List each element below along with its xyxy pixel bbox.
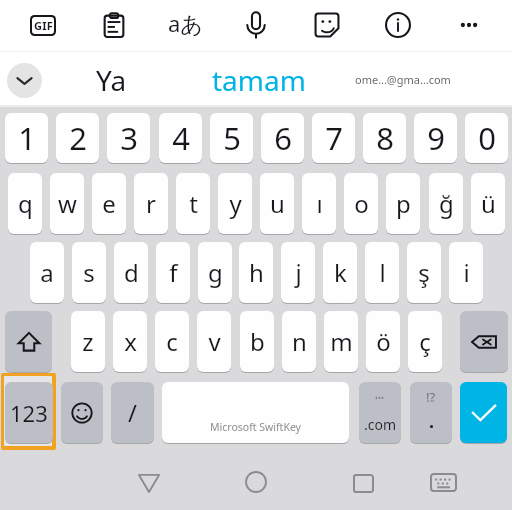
button[interactable]: Back [123, 457, 175, 509]
staticText: Ya [96, 61, 127, 99]
button[interactable]: ı [302, 173, 336, 234]
button[interactable]: Clipboard [91, 2, 137, 48]
staticText: ••• [375, 392, 385, 403]
button[interactable]: n [282, 311, 316, 372]
button[interactable]: tamam [196, 53, 321, 104]
staticText: m [330, 325, 353, 358]
button[interactable]: ç [408, 311, 442, 372]
button[interactable]: Emoji [61, 382, 103, 443]
button[interactable]: b [240, 311, 274, 372]
button[interactable]: 0 [465, 113, 508, 163]
button[interactable]: ome…@gma…com [340, 53, 465, 104]
staticText: 3 [120, 117, 138, 159]
button[interactable]: f [156, 242, 190, 303]
button[interactable]: Voice input [233, 2, 279, 48]
staticText: j [295, 256, 302, 289]
button[interactable]: Home [230, 456, 282, 508]
staticText: 0 [478, 117, 496, 159]
button[interactable]: x [113, 311, 147, 372]
button[interactable]: 4 [159, 113, 202, 163]
button[interactable]: ş [407, 242, 441, 303]
button[interactable]: 123 [5, 382, 53, 443]
button[interactable]: k [323, 242, 357, 303]
button[interactable]: 9 [414, 113, 457, 163]
button[interactable]: Recents [337, 457, 389, 509]
button[interactable]: 7 [312, 113, 355, 163]
button[interactable]: Change language [162, 2, 208, 48]
staticText: b [250, 325, 265, 358]
staticText: w [58, 187, 77, 220]
button[interactable]: d [114, 242, 148, 303]
button[interactable]: ğ [429, 173, 463, 234]
button[interactable]: s [72, 242, 106, 303]
button[interactable]: GIF [20, 2, 66, 48]
button[interactable]: l [365, 242, 399, 303]
button[interactable]: q [8, 173, 42, 234]
staticText: ••• [427, 397, 435, 407]
button[interactable]: t [176, 173, 210, 234]
staticText: ı [316, 187, 323, 220]
button[interactable]: z [71, 311, 105, 372]
button[interactable]: e [92, 173, 126, 234]
staticText: g [208, 256, 223, 289]
staticText: tamam [212, 61, 306, 99]
button[interactable]: h [239, 242, 273, 303]
staticText: .com [364, 415, 397, 434]
button[interactable]: Enter [460, 382, 507, 443]
button[interactable]: 2 [56, 113, 99, 163]
button[interactable]: Stickers [304, 2, 350, 48]
button[interactable]: o [344, 173, 378, 234]
staticText: a [40, 256, 54, 289]
button[interactable]: i [449, 242, 483, 303]
button[interactable]: r [134, 173, 168, 234]
staticText: z [82, 325, 94, 358]
button[interactable]: c [155, 311, 189, 372]
button[interactable]: Hide keyboard [417, 456, 469, 508]
staticText: o [354, 187, 369, 220]
button[interactable]: w [50, 173, 84, 234]
button[interactable]: y [218, 173, 252, 234]
staticText: GIF [34, 18, 53, 33]
button[interactable]: / [111, 382, 154, 443]
staticText: 8 [376, 117, 394, 159]
button[interactable]: ü [471, 173, 505, 234]
button[interactable]: j [281, 242, 315, 303]
staticText: i [463, 256, 470, 289]
button[interactable]: p [386, 173, 420, 234]
staticText: 7 [325, 117, 343, 159]
button[interactable]: 5 [210, 113, 253, 163]
button[interactable]: m [324, 311, 358, 372]
button[interactable]: 8 [363, 113, 406, 163]
staticText: s [83, 256, 95, 289]
button[interactable]: ••• [359, 382, 401, 443]
button[interactable]: u [260, 173, 294, 234]
staticText: x [124, 325, 137, 358]
staticText: !? [426, 388, 436, 406]
staticText: ğ [439, 187, 454, 220]
button[interactable]: 3 [107, 113, 150, 163]
button[interactable]: Backspace [460, 311, 508, 372]
button[interactable]: 1 [5, 113, 48, 163]
button[interactable]: a [30, 242, 64, 303]
button[interactable]: Punctuation [410, 382, 452, 443]
button[interactable]: Info [375, 2, 421, 48]
staticText: d [124, 256, 139, 289]
button[interactable]: ö [366, 311, 400, 372]
button[interactable]: More options [446, 2, 492, 48]
staticText: q [18, 187, 33, 220]
button[interactable]: g [198, 242, 232, 303]
button[interactable]: 6 [261, 113, 304, 163]
button[interactable]: v [197, 311, 231, 372]
staticText: e [102, 187, 116, 220]
button[interactable]: Collapse toolbar [7, 63, 42, 98]
button[interactable]: Ya [61, 53, 161, 104]
staticText: Microsoft SwiftKey [210, 420, 301, 434]
staticText: l [379, 256, 386, 289]
staticText: c [166, 325, 178, 358]
staticText: r [146, 187, 156, 220]
button[interactable]: Space [162, 382, 349, 443]
staticText: n [292, 325, 307, 358]
staticText: t [189, 187, 198, 220]
staticText: 5 [223, 117, 241, 159]
button[interactable]: Shift [5, 311, 52, 372]
